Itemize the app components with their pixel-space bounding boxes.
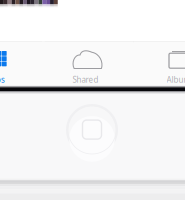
- staticText: Photos: [0, 74, 5, 85]
- button[interactable]: Photos: [0, 41, 44, 87]
- staticText: Shared: [72, 74, 98, 85]
- staticText: Albums: [166, 74, 185, 85]
- button[interactable]: Albums: [133, 41, 185, 87]
- button[interactable]: Shared: [42, 41, 133, 87]
